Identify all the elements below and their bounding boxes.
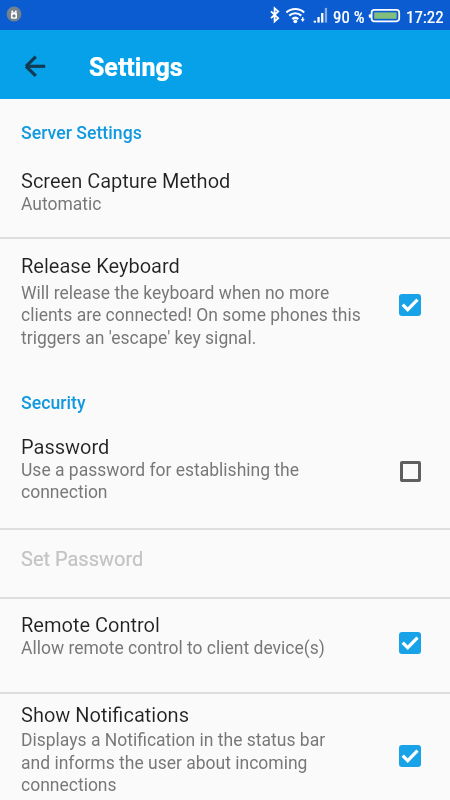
staticText: Allow remote control to client device(s): [21, 638, 325, 659]
staticText: Displays a Notification in the status ba…: [21, 730, 326, 751]
staticText: Automatic: [21, 194, 102, 215]
staticText: 17:22: [406, 7, 444, 27]
staticText: Use a password for establishing the: [21, 460, 300, 481]
staticText: and informs the user about incoming: [21, 753, 308, 774]
staticText: Screen Capture Method: [21, 169, 231, 192]
staticText: Password: [21, 435, 110, 458]
button[interactable]: Password: [0, 420, 450, 528]
button[interactable]: Show Notifications: [0, 694, 450, 800]
button[interactable]: Screen Capture Method: [0, 149, 450, 237]
staticText: Remote Control: [21, 613, 160, 636]
staticText: Show Notifications: [21, 703, 189, 726]
staticText: Settings: [89, 53, 183, 82]
staticText: Will release the keyboard when no more: [21, 283, 330, 304]
staticText: triggers an 'escape' key signal.: [21, 328, 257, 349]
button[interactable]: [14, 44, 56, 86]
button[interactable]: Release Keyboard: [0, 239, 450, 371]
staticText: connections: [21, 775, 117, 796]
staticText: Release Keyboard: [21, 254, 180, 277]
staticText: connection: [21, 482, 108, 503]
button[interactable]: Remote Control: [0, 599, 450, 692]
staticText: Set Password: [21, 547, 144, 570]
staticText: clients are connected! On some phones th…: [21, 305, 361, 326]
staticText: Server Settings: [21, 123, 142, 144]
staticText: Security: [21, 393, 86, 414]
staticText: 90 %: [333, 7, 365, 27]
button[interactable]: Set Password: [0, 530, 450, 597]
